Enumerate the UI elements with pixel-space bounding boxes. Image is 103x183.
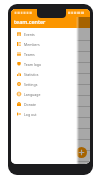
button[interactable]: Language [11,89,79,99]
staticText: Log out [24,112,37,117]
button[interactable]: Log out [11,109,79,119]
staticText: Events [24,32,35,37]
button[interactable]: Settings [11,79,79,89]
staticText: Teams [24,52,35,57]
staticText: Statistics [24,72,39,77]
staticText: Donate [24,102,37,107]
button[interactable]: Statistics [11,69,79,79]
button[interactable]: Members [11,39,79,49]
button[interactable]: Donate [11,99,79,109]
button[interactable]: Add [76,147,87,158]
staticText: team.center [14,18,46,25]
staticText: Settings [24,82,38,87]
button[interactable]: Team logo [11,59,79,69]
button[interactable]: Teams [11,49,79,59]
button[interactable]: Events [11,29,79,39]
staticText: Language [24,92,41,97]
staticText: Team logo [24,62,42,67]
staticText: Members [24,42,40,47]
